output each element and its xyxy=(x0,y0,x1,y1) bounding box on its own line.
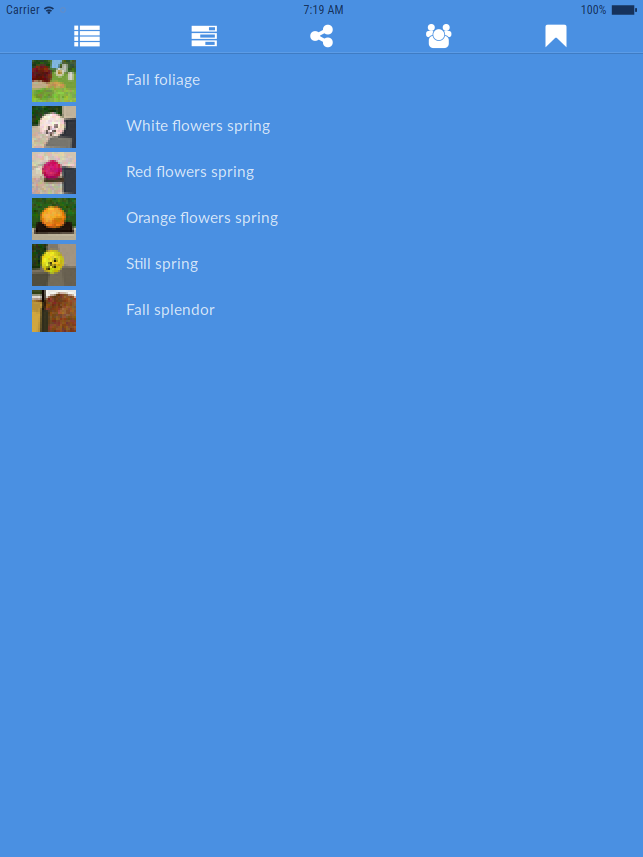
staticText: White flowers spring xyxy=(126,116,270,134)
button[interactable]: Bookmarks xyxy=(526,20,586,52)
staticText: 7:19 AM xyxy=(303,3,343,17)
button[interactable]: Fall foliage xyxy=(0,58,643,104)
button[interactable]: Red flowers spring xyxy=(0,150,643,196)
staticText: Fall splendor xyxy=(126,300,215,318)
button[interactable]: Orange flowers spring xyxy=(0,196,643,242)
staticText: Carrier xyxy=(6,3,40,17)
button[interactable]: List view xyxy=(57,20,117,52)
button[interactable]: White flowers spring xyxy=(0,104,643,150)
button[interactable]: Still spring xyxy=(0,242,643,288)
staticText: Orange flowers spring xyxy=(126,208,278,226)
button[interactable]: Adjust settings xyxy=(174,20,234,52)
button[interactable]: Contacts xyxy=(408,20,469,52)
button[interactable]: Fall splendor xyxy=(0,288,643,334)
staticText: Fall foliage xyxy=(126,70,200,88)
button[interactable]: Share xyxy=(291,20,352,52)
staticText: 100% xyxy=(581,3,607,17)
staticText: Red flowers spring xyxy=(126,162,254,180)
staticText: Still spring xyxy=(126,254,198,272)
